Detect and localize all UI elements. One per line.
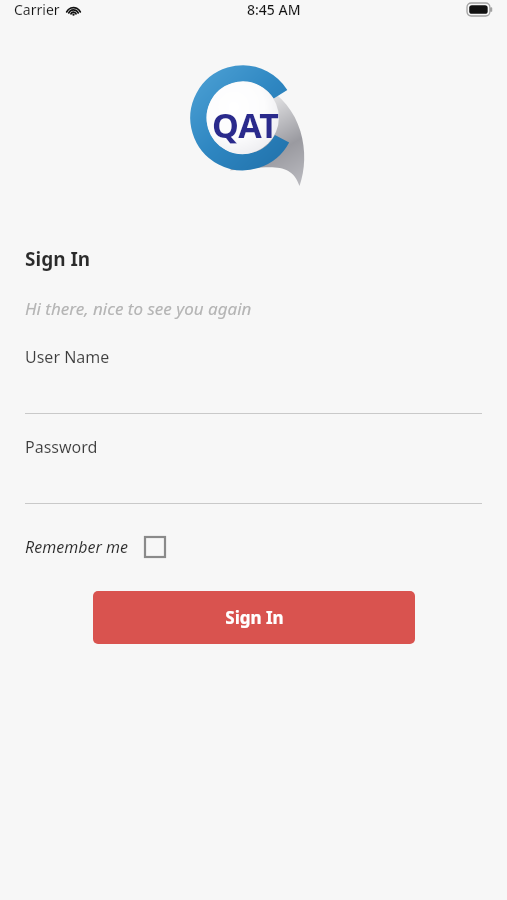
staticText: Carrier bbox=[14, 0, 60, 19]
other: Remember me checkbox bbox=[145, 537, 165, 557]
staticText: Password bbox=[25, 436, 98, 458]
button[interactable]: Sign In bbox=[93, 591, 415, 644]
button[interactable]: Remember me bbox=[25, 532, 165, 562]
staticText: User Name bbox=[25, 346, 110, 368]
staticText: Remember me bbox=[25, 536, 128, 558]
staticText: 8:45 AM bbox=[247, 0, 301, 19]
staticText: Sign In bbox=[225, 606, 284, 629]
staticText: Hi there, nice to see you again bbox=[25, 297, 252, 320]
staticText: QAT bbox=[212, 102, 279, 148]
staticText: Sign In bbox=[25, 246, 91, 272]
